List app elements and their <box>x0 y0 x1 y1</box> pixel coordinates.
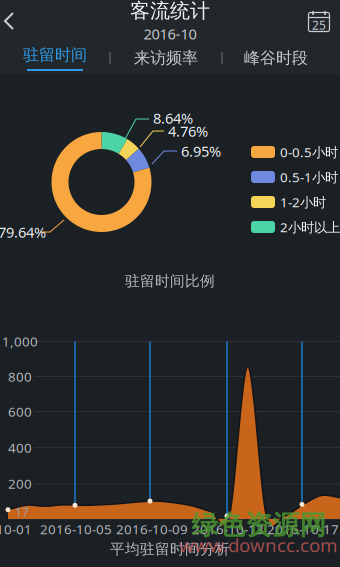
staticText: 200 <box>8 475 32 492</box>
staticText: 1-2小时 <box>280 193 326 211</box>
staticText: 2016-10-05 <box>40 520 112 538</box>
staticText: 2016-10 <box>143 24 196 43</box>
staticText: 驻留时间比例 <box>125 272 215 290</box>
staticText: 1,000 <box>2 332 38 350</box>
staticText: 平均驻留时间分析 <box>110 540 230 558</box>
staticText: 2小时以上 <box>280 218 340 236</box>
button[interactable]: Pick date <box>301 0 337 42</box>
staticText: 0.5-1小时 <box>280 168 338 186</box>
staticText: 79.64% <box>0 222 46 242</box>
staticText: 峰谷时段 <box>244 48 308 68</box>
staticText: 2016-10-13 <box>192 520 264 538</box>
staticText: 8.64% <box>153 108 193 128</box>
button[interactable]: 峰谷时段 <box>222 42 330 74</box>
staticText: 2016-10-09 <box>116 520 188 538</box>
staticText: 6.95% <box>181 141 221 161</box>
staticText: 10-01 <box>0 520 32 538</box>
staticText: 800 <box>8 368 32 385</box>
staticText: 驻留时间 <box>23 45 87 65</box>
staticText: 400 <box>8 439 32 456</box>
staticText: www.downcc.com <box>179 533 337 557</box>
staticText: 17 <box>15 504 29 520</box>
button[interactable]: 驻留时间 <box>0 42 110 74</box>
staticText: 客流统计 <box>130 0 210 23</box>
staticText: 4.76% <box>168 121 208 141</box>
staticText: 绿色资源网 <box>191 509 326 541</box>
staticText: 25 <box>312 17 326 33</box>
staticText: 2016-10-17 <box>267 520 339 538</box>
staticText: 0-0.5小时 <box>280 143 338 161</box>
button[interactable]: 来访频率 <box>112 42 220 74</box>
button[interactable]: Back <box>0 0 38 42</box>
staticText: 来访频率 <box>134 48 198 68</box>
staticText: 600 <box>8 403 32 420</box>
